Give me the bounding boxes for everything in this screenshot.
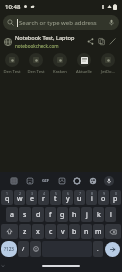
staticText: f: [49, 210, 52, 220]
button[interactable]: 8: [86, 190, 97, 205]
button[interactable]: g: [57, 207, 68, 222]
staticText: j: [86, 210, 88, 220]
button[interactable]: JetDo…: [96, 52, 120, 77]
staticText: 0: [115, 191, 117, 196]
staticText: s: [23, 210, 27, 220]
button[interactable]: a: [6, 207, 18, 222]
staticText: notebookcheck.com: [15, 43, 59, 49]
button[interactable]: s: [19, 207, 31, 222]
staticText: e: [30, 194, 34, 204]
button[interactable]: 5: [50, 190, 61, 205]
staticText: h: [72, 210, 77, 220]
button[interactable]: Notebook Test, Laptop Tes…: [0, 32, 122, 51]
staticText: 2: [19, 191, 21, 196]
button[interactable]: 4: [38, 190, 49, 205]
button[interactable]: 1: [1, 190, 13, 205]
button[interactable]: Den Test sl…: [0, 52, 24, 77]
button[interactable]: Copy: [96, 36, 107, 47]
button[interactable]: Theme: [87, 175, 98, 186]
staticText: 6: [67, 191, 69, 196]
staticText: GIF: [42, 178, 49, 184]
staticText: Den Test sl…: [1, 69, 23, 75]
staticText: ?123: [4, 246, 14, 252]
button[interactable]: GIF: [40, 175, 51, 186]
other: Search: [7, 19, 14, 26]
button[interactable]: 2: [14, 190, 25, 205]
other: Hide keyboard: [0, 263, 6, 269]
button[interactable]: 7: [74, 190, 85, 205]
staticText: m: [95, 227, 102, 237]
staticText: Search or type web address: [19, 19, 97, 27]
button[interactable]: j: [81, 207, 92, 222]
button[interactable]: Clipboard: [8, 175, 19, 186]
staticText: 9: [103, 191, 105, 196]
button[interactable]: v: [57, 224, 68, 239]
staticText: 1: [6, 191, 8, 196]
staticText: z: [23, 227, 27, 237]
staticText: q: [5, 194, 10, 204]
staticText: Kraken Jav…: [49, 69, 71, 75]
staticText: x: [36, 227, 40, 237]
button[interactable]: Shift: [1, 224, 18, 239]
button[interactable]: x: [32, 224, 44, 239]
button[interactable]: Emoji: [30, 241, 41, 257]
button[interactable]: k: [93, 207, 104, 222]
button[interactable]: 6: [62, 190, 73, 205]
button[interactable]: ?123: [1, 241, 17, 257]
staticText: 7: [79, 191, 81, 196]
staticText: a: [10, 210, 14, 220]
staticText: r: [42, 194, 45, 204]
button[interactable]: Share: [85, 36, 96, 47]
staticText: n: [84, 227, 89, 237]
button[interactable]: 9: [98, 190, 109, 205]
button[interactable]: Settings: [71, 175, 82, 186]
button[interactable]: h: [69, 207, 80, 222]
staticText: c: [49, 227, 53, 237]
staticText: p: [113, 194, 118, 204]
button[interactable]: Stickers: [24, 175, 35, 186]
button[interactable]: 3: [26, 190, 37, 205]
staticText: JetDo…: [101, 69, 115, 75]
button[interactable]: Backspace: [105, 224, 121, 239]
staticText: Aktuelle Ko…: [73, 69, 95, 75]
staticText: Den Test sl…: [25, 69, 47, 75]
staticText: l: [110, 210, 112, 220]
button[interactable]: b: [69, 224, 80, 239]
button[interactable]: Aktuelle Ko…: [72, 52, 96, 77]
button[interactable]: Search: [3, 15, 119, 30]
button[interactable]: Den Test sl…: [24, 52, 48, 77]
button[interactable]: n: [81, 224, 92, 239]
staticText: 8: [91, 191, 93, 196]
button[interactable]: Voice search: [108, 19, 115, 26]
staticText: 4: [43, 191, 45, 196]
button[interactable]: Edit: [107, 36, 118, 47]
button[interactable]: Enter: [105, 242, 120, 257]
staticText: v: [61, 227, 65, 237]
staticText: /: [22, 245, 25, 253]
staticText: d: [36, 210, 41, 220]
button[interactable]: c: [45, 224, 56, 239]
button[interactable]: /: [18, 241, 29, 257]
button[interactable]: d: [32, 207, 44, 222]
staticText: u: [77, 194, 82, 204]
staticText: w: [17, 194, 23, 204]
button[interactable]: f: [45, 207, 56, 222]
staticText: 5: [55, 191, 57, 196]
button[interactable]: 0: [110, 190, 121, 205]
button[interactable]: z: [19, 224, 31, 239]
staticText: y: [66, 194, 70, 204]
button[interactable]: m: [93, 224, 104, 239]
staticText: o: [101, 194, 106, 204]
button[interactable]: Translate: [56, 175, 67, 186]
button[interactable]: l: [105, 207, 116, 222]
button[interactable]: .: [93, 241, 103, 257]
staticText: g: [60, 210, 65, 220]
staticText: t: [54, 194, 57, 204]
staticText: b: [72, 227, 77, 237]
staticText: i: [91, 194, 93, 204]
button[interactable]: Voice input: [103, 175, 114, 186]
button[interactable]: Kraken Jav…: [48, 52, 72, 77]
staticText: .: [97, 245, 99, 253]
staticText: 3: [31, 191, 33, 196]
